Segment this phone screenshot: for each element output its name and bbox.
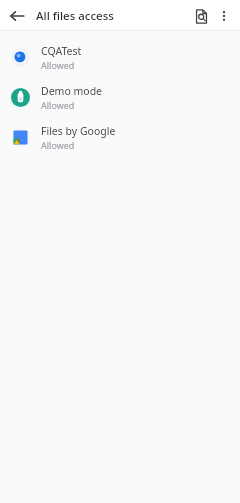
staticText: CQATest (41, 44, 82, 58)
button[interactable]: Show system (189, 4, 213, 28)
staticText: All files access (36, 8, 189, 24)
button[interactable]: CQATest (0, 37, 240, 77)
staticText: Files by Google (41, 124, 116, 138)
button[interactable]: More options (213, 5, 235, 27)
staticText: Allowed (41, 99, 75, 111)
staticText: Allowed (41, 139, 75, 151)
staticText: Demo mode (41, 84, 103, 98)
staticText: Allowed (41, 59, 75, 71)
button[interactable]: Demo mode (0, 77, 240, 117)
button[interactable]: Back (6, 5, 28, 27)
button[interactable]: Files by Google (0, 117, 240, 157)
